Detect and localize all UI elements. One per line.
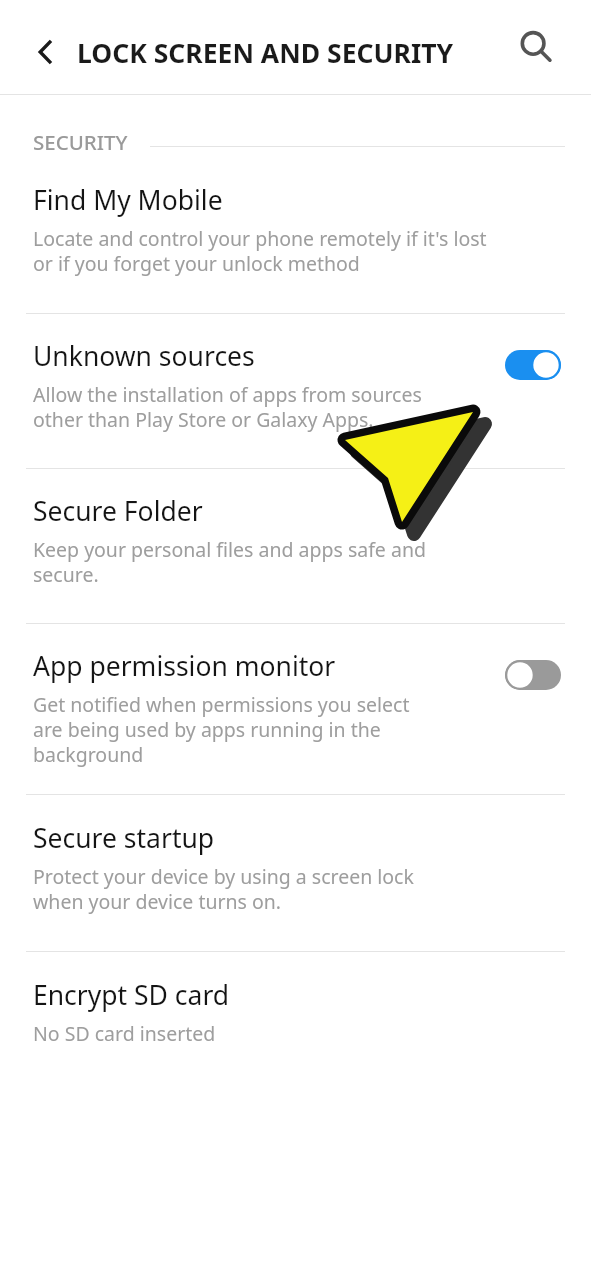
button[interactable]: Encrypt SD card <box>0 952 591 1077</box>
button[interactable]: Search <box>505 16 567 78</box>
staticText: Allow the installation of apps from sour… <box>33 381 422 433</box>
staticText: Secure startup <box>33 820 215 856</box>
button[interactable]: Unknown sources <box>0 314 591 468</box>
button[interactable]: App permission monitor <box>0 624 591 794</box>
staticText: Encrypt SD card <box>33 977 230 1013</box>
button[interactable]: Secure Folder <box>0 469 591 623</box>
button[interactable]: Secure startup <box>0 795 591 951</box>
staticText: Get notified when permissions you select… <box>33 691 410 768</box>
staticText: No SD card inserted <box>33 1020 216 1047</box>
staticText: App permission monitor <box>33 648 336 684</box>
staticText: Keep your personal files and apps safe a… <box>33 536 426 588</box>
button[interactable]: App permission monitor, off <box>501 656 565 694</box>
button[interactable]: Unknown sources, on <box>501 346 565 384</box>
button[interactable]: Find My Mobile <box>0 157 591 313</box>
button[interactable]: Back <box>16 23 74 81</box>
staticText: Protect your device by using a screen lo… <box>33 863 414 915</box>
staticText: Secure Folder <box>33 493 203 529</box>
staticText: Unknown sources <box>33 338 255 374</box>
staticText: LOCK SCREEN AND SECURITY <box>77 35 454 71</box>
staticText: Locate and control your phone remotely i… <box>33 225 487 277</box>
staticText: Find My Mobile <box>33 182 223 218</box>
staticText: SECURITY <box>33 128 128 156</box>
